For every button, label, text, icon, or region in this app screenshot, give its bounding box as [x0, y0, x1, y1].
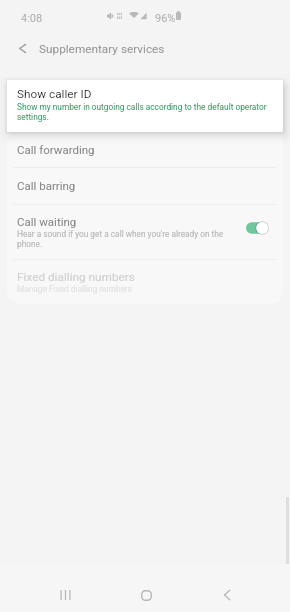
- button[interactable]: Call forwarding: [7, 132, 283, 167]
- staticText: 96%: [155, 12, 176, 25]
- staticText: Call waiting: [17, 215, 77, 228]
- button[interactable]: Home: [130, 579, 162, 611]
- staticText: Show caller ID: [17, 87, 92, 101]
- button[interactable]: Navigate up: [8, 34, 36, 62]
- staticText: Call barring: [17, 179, 76, 192]
- staticText: Supplementary services: [39, 42, 165, 56]
- staticText: 4:08: [21, 12, 43, 25]
- staticText: Fixed dialling numbers: [17, 270, 135, 284]
- staticText: Show my number in outgoing calls accordi…: [17, 102, 283, 122]
- button[interactable]: Call waiting toggle: [246, 221, 270, 235]
- button[interactable]: Recents: [49, 579, 81, 611]
- button[interactable]: Call waiting: [7, 205, 283, 259]
- button[interactable]: Call barring: [7, 168, 283, 204]
- staticText: Call forwarding: [17, 143, 95, 156]
- button[interactable]: Back: [211, 579, 243, 611]
- staticText: Manage Fixed dialling numbers: [17, 284, 132, 294]
- staticText: Hear a sound if you get a call when you'…: [17, 229, 237, 249]
- button[interactable]: Show caller ID: [7, 80, 283, 132]
